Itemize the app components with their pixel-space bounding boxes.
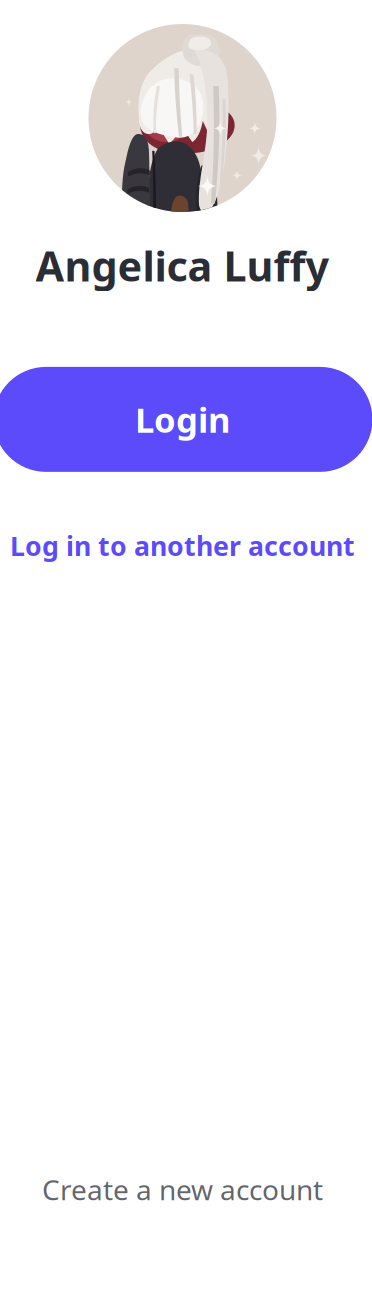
button[interactable]: Create a new account — [42, 1171, 323, 1208]
button[interactable]: Login — [0, 367, 372, 472]
staticText: Angelica Luffy — [35, 238, 329, 293]
staticText: Log in to another account — [10, 528, 355, 563]
button[interactable]: Log in to another account — [10, 528, 355, 563]
staticText: Login — [135, 396, 231, 442]
staticText: Create a new account — [42, 1171, 323, 1208]
